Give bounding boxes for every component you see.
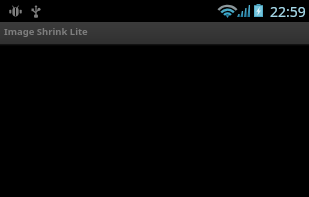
other: Wi-Fi signal xyxy=(219,4,236,18)
staticText: 22:59 xyxy=(270,2,306,21)
button[interactable]: Image Shrink Lite xyxy=(0,22,96,44)
staticText: Image Shrink Lite xyxy=(4,25,88,38)
other: USB connected xyxy=(31,5,41,18)
other: Battery charging xyxy=(254,4,263,17)
other: Mobile signal strength xyxy=(237,4,250,17)
other: USB debugging connected xyxy=(9,5,22,18)
